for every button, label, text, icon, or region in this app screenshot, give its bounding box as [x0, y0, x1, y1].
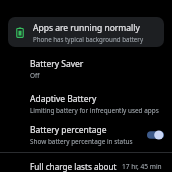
staticText: Off — [30, 71, 40, 80]
button[interactable]: Battery status — [8, 17, 164, 47]
button[interactable]: Battery Saver — [0, 57, 172, 81]
staticText: Show battery percentage in status bar — [30, 137, 144, 146]
button[interactable]: Battery percentage — [0, 124, 172, 146]
staticText: Phone has typical background battery usa… — [33, 35, 158, 43]
staticText: Apps are running normally — [33, 22, 140, 34]
staticText: Adaptive Battery — [30, 93, 97, 105]
button[interactable]: Battery percentage toggle, on — [147, 130, 164, 140]
other: Battery status — [13, 25, 27, 39]
staticText: Full charge lasts about — [30, 161, 122, 172]
staticText: 17 hr, 45 min — [122, 162, 162, 171]
button[interactable]: Adaptive Battery — [0, 92, 172, 116]
staticText: Battery percentage — [30, 124, 107, 136]
staticText: Battery Saver — [30, 58, 84, 70]
button[interactable]: Full charge lasts about — [0, 161, 172, 172]
staticText: Limiting battery for infrequently used a… — [30, 106, 159, 115]
